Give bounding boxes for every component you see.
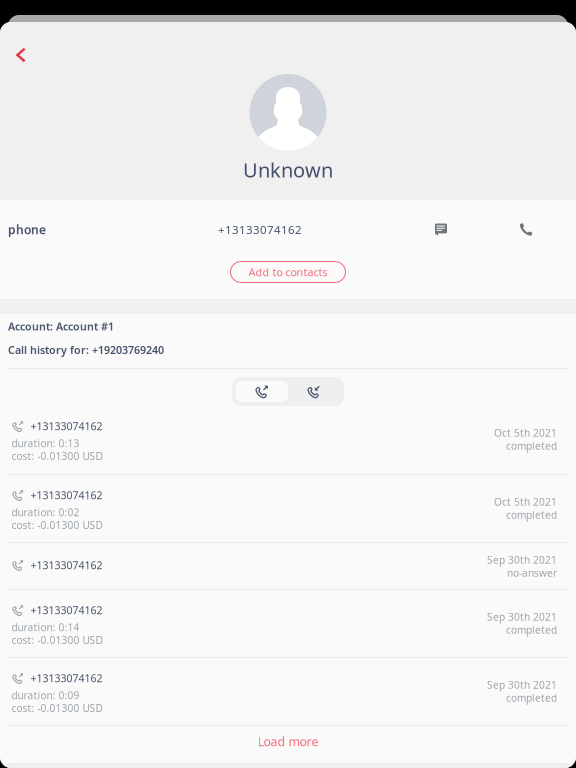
staticText: +13133074162 [218,222,302,237]
staticText: +13133074162 [30,603,102,617]
button[interactable]: +13133074162 [0,543,576,589]
staticText: completed [506,623,557,637]
staticText: +13133074162 [30,671,102,685]
staticText: cost: -0.01300 USD [11,633,102,647]
staticText: +13133074162 [30,488,102,502]
button[interactable]: Send message [424,217,458,241]
button[interactable]: Load more [0,726,576,763]
staticText: Oct 5th 2021 [494,426,557,440]
staticText: Unknown [243,156,333,183]
button[interactable]: Call [509,217,543,241]
staticText: +13133074162 [30,558,102,572]
staticText: Sep 30th 2021 [487,678,557,692]
staticText: Oct 5th 2021 [494,495,557,509]
staticText: phone [8,221,46,238]
button[interactable]: Outgoing calls [236,381,288,402]
staticText: Account: Account #1 [8,319,114,333]
button[interactable]: +13133074162 [0,475,576,542]
staticText: completed [506,439,557,453]
staticText: cost: -0.01300 USD [11,701,102,715]
staticText: cost: -0.01300 USD [11,449,102,463]
button[interactable]: +13133074162 [0,406,576,474]
button[interactable]: Add to contacts [230,261,345,282]
button[interactable]: Incoming calls [288,381,340,402]
staticText: Sep 30th 2021 [487,553,557,567]
staticText: Call history for: +19203769240 [8,342,164,357]
button[interactable]: +13133074162 [0,590,576,657]
staticText: duration: 0:13 [11,436,79,450]
staticText: completed [506,691,557,705]
staticText: duration: 0:02 [11,505,79,519]
staticText: duration: 0:09 [11,688,79,702]
staticText: Sep 30th 2021 [487,610,557,624]
staticText: no-answer [507,566,557,580]
button[interactable]: Back [6,42,36,68]
staticText: completed [506,508,557,522]
staticText: Load more [257,733,318,750]
staticText: Add to contacts [248,265,327,279]
staticText: duration: 0:14 [11,620,79,634]
button[interactable]: +13133074162 [0,658,576,725]
staticText: cost: -0.01300 USD [11,518,102,532]
staticText: +13133074162 [30,419,102,433]
